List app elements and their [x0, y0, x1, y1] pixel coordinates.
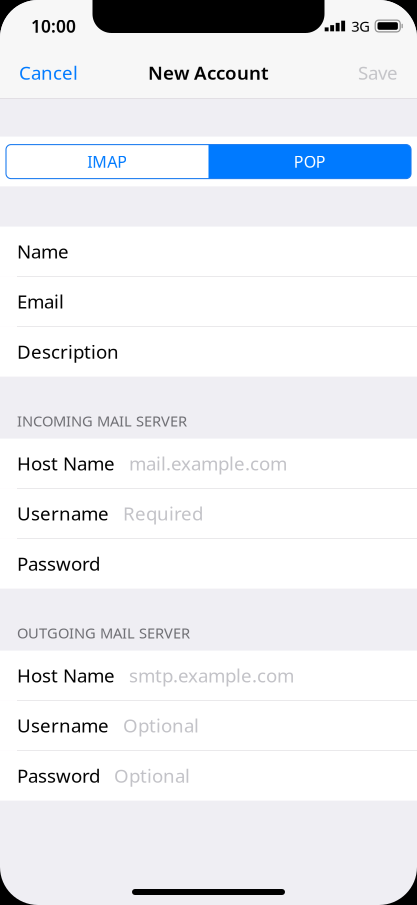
button[interactable]: Username — [0, 489, 417, 539]
staticText: Required — [123, 501, 203, 526]
staticText: Username — [17, 713, 109, 738]
staticText: 10:00 — [31, 14, 76, 37]
staticText: Optional — [114, 763, 190, 788]
staticText: Email — [17, 289, 64, 314]
button[interactable]: Email — [0, 277, 417, 327]
staticText: New Account — [148, 60, 269, 85]
staticText: Description — [17, 339, 119, 364]
button[interactable]: Username — [0, 701, 417, 751]
staticText: 3G — [351, 16, 370, 36]
button[interactable]: Save — [344, 50, 417, 94]
staticText: POP — [294, 151, 326, 172]
staticText: mail.example.com — [129, 451, 287, 476]
staticText: Host Name — [17, 451, 115, 476]
button[interactable]: Description — [0, 327, 417, 377]
button[interactable]: Cancel — [0, 50, 92, 94]
button[interactable]: Host Name — [0, 439, 417, 489]
button[interactable]: Name — [0, 227, 417, 277]
button[interactable]: Host Name — [0, 651, 417, 701]
staticText: IMAP — [87, 151, 127, 172]
button[interactable]: Password — [0, 751, 417, 801]
staticText: Optional — [123, 713, 199, 738]
staticText: OUTGOING MAIL SERVER — [17, 623, 190, 643]
staticText: Username — [17, 501, 109, 526]
staticText: smtp.example.com — [129, 663, 294, 688]
staticText: Cancel — [19, 60, 78, 85]
staticText: Save — [358, 60, 398, 85]
button[interactable]: Password — [0, 539, 417, 589]
staticText: Password — [17, 551, 100, 576]
staticText: Name — [17, 239, 69, 264]
staticText: Password — [17, 763, 100, 788]
button[interactable]: POP — [208, 145, 411, 179]
button[interactable]: IMAP — [6, 145, 208, 179]
staticText: INCOMING MAIL SERVER — [17, 411, 187, 431]
staticText: Host Name — [17, 663, 115, 688]
